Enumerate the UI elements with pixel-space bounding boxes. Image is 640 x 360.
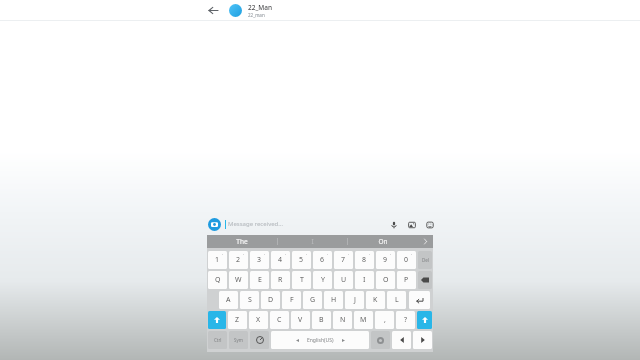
button[interactable]: C — [270, 311, 289, 329]
button[interactable]: ? — [396, 311, 415, 329]
staticText: 5 — [299, 255, 304, 265]
staticText: · — [390, 251, 392, 257]
staticText: U — [341, 275, 347, 285]
staticText: I — [363, 275, 366, 285]
button[interactable]: Camera — [208, 218, 221, 231]
button[interactable]: Q — [208, 271, 227, 289]
button[interactable]: D — [261, 291, 280, 309]
button[interactable]: Sym — [229, 331, 248, 349]
button[interactable]: 3 — [250, 251, 269, 269]
staticText: J — [354, 295, 356, 305]
staticText: R — [278, 275, 283, 285]
staticText: V — [298, 315, 303, 325]
button[interactable]: S — [240, 291, 259, 309]
button[interactable]: Gallery — [406, 219, 417, 230]
button[interactable]: The — [207, 235, 277, 248]
staticText: P — [404, 275, 409, 285]
button[interactable]: Back — [204, 1, 222, 19]
staticText: · — [306, 251, 308, 257]
button[interactable]: 8 — [355, 251, 374, 269]
staticText: ? — [404, 315, 408, 325]
button[interactable]: I — [355, 271, 374, 289]
staticText: H — [331, 295, 337, 305]
staticText: S — [248, 295, 252, 305]
staticText: · — [348, 251, 350, 257]
button[interactable]: G — [303, 291, 322, 309]
button[interactable]: 9 — [376, 251, 395, 269]
button[interactable]: Shift — [417, 311, 432, 329]
button[interactable]: Voice input — [388, 219, 399, 230]
button[interactable]: Cursor right — [413, 331, 432, 349]
staticText: I — [311, 237, 314, 246]
staticText: The — [236, 237, 248, 246]
button[interactable]: O — [376, 271, 395, 289]
button[interactable]: K — [366, 291, 385, 309]
button[interactable]: Cursor left — [392, 331, 411, 349]
staticText: O — [383, 275, 389, 285]
staticText: · — [243, 251, 245, 257]
button[interactable]: L — [387, 291, 406, 309]
button[interactable]: E — [250, 271, 269, 289]
button[interactable]: 2 — [229, 251, 248, 269]
staticText: 0 — [404, 255, 409, 265]
button[interactable]: T — [292, 271, 311, 289]
button[interactable]: F — [282, 291, 301, 309]
staticText: E — [258, 275, 262, 285]
button[interactable]: More suggestions — [417, 235, 433, 248]
staticText: B — [319, 315, 324, 325]
staticText: Ctrl — [214, 337, 222, 343]
button[interactable]: P — [397, 271, 416, 289]
staticText: 2 — [236, 255, 241, 265]
button[interactable]: Y — [313, 271, 332, 289]
button[interactable]: A — [219, 291, 238, 309]
button[interactable]: X — [249, 311, 268, 329]
staticText: · — [222, 251, 224, 257]
staticText: On — [378, 237, 388, 246]
staticText: 6 — [320, 255, 325, 265]
staticText: 22_man — [248, 12, 265, 18]
button[interactable]: M — [354, 311, 373, 329]
button[interactable] — [418, 271, 432, 289]
staticText: 9 — [383, 255, 388, 265]
button[interactable]: 5 — [292, 251, 311, 269]
button[interactable]: Settings — [371, 331, 390, 349]
staticText: Z — [235, 315, 240, 325]
button[interactable]: , — [375, 311, 394, 329]
button[interactable]: Ctrl — [208, 331, 227, 349]
button[interactable]: Delete — [418, 251, 432, 269]
staticText: 1 — [215, 255, 220, 265]
button[interactable]: On — [348, 235, 417, 248]
button[interactable]: 1 — [208, 251, 227, 269]
button[interactable]: N — [333, 311, 352, 329]
button[interactable]: H — [324, 291, 343, 309]
button[interactable]: R — [271, 271, 290, 289]
staticText: , — [384, 315, 386, 325]
button[interactable]: J — [345, 291, 364, 309]
button[interactable]: 4 — [271, 251, 290, 269]
staticText: Q — [215, 275, 221, 285]
staticText: D — [268, 295, 274, 305]
staticText: K — [373, 295, 378, 305]
button[interactable]: Emoji — [250, 331, 269, 349]
button[interactable]: B — [312, 311, 331, 329]
staticText: L — [395, 295, 399, 305]
button[interactable]: 6 — [313, 251, 332, 269]
staticText: Message received… — [228, 220, 388, 228]
button[interactable]: 22_Man — [229, 3, 273, 18]
button[interactable]: Space, English US — [271, 331, 369, 349]
button[interactable]: W — [229, 271, 248, 289]
staticText: 22_Man — [248, 3, 273, 12]
button[interactable]: Z — [228, 311, 247, 329]
staticText: English(US) — [307, 337, 334, 344]
button[interactable]: U — [334, 271, 353, 289]
button[interactable]: V — [291, 311, 310, 329]
button[interactable]: 0 — [397, 251, 416, 269]
staticText: 8 — [362, 255, 367, 265]
button[interactable] — [409, 291, 430, 309]
staticText: F — [290, 295, 294, 305]
button[interactable]: Shift — [208, 311, 226, 329]
button[interactable]: 7 — [334, 251, 353, 269]
button[interactable]: Stickers — [424, 219, 435, 230]
staticText: M — [360, 315, 367, 325]
